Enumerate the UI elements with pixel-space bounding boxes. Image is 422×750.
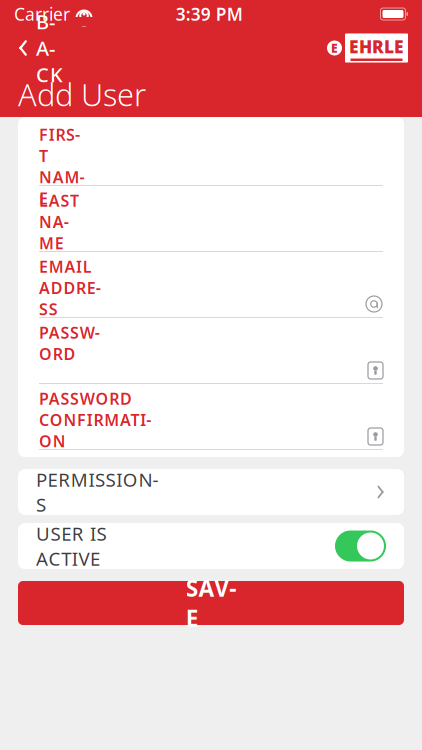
staticText: SAVE [186, 573, 236, 633]
staticText: LAST NAME [39, 190, 84, 254]
staticText: PASSWORD CONFIRMATION [39, 388, 165, 452]
staticText: Add User [18, 74, 146, 115]
staticText: 3:39 PM [176, 2, 243, 25]
button[interactable]: PERMISSIONS [18, 469, 404, 515]
button[interactable]: EHRLE home [313, 28, 422, 68]
staticText: BACK [36, 8, 63, 88]
staticText: Carrier [14, 2, 70, 25]
button[interactable]: User is active [335, 530, 386, 561]
staticText: EHRLE [349, 35, 404, 58]
button[interactable]: SAVE [18, 581, 404, 625]
staticText: EMAIL ADDRESS [39, 256, 110, 320]
staticText: USER IS ACTIVE [36, 521, 107, 571]
staticText: PERMISSIONS [36, 467, 158, 517]
staticText: FIRST NAME [39, 124, 85, 188]
button[interactable]: BACK [0, 28, 80, 68]
staticText: E [331, 40, 338, 56]
staticText: PASSWORD [39, 322, 113, 364]
